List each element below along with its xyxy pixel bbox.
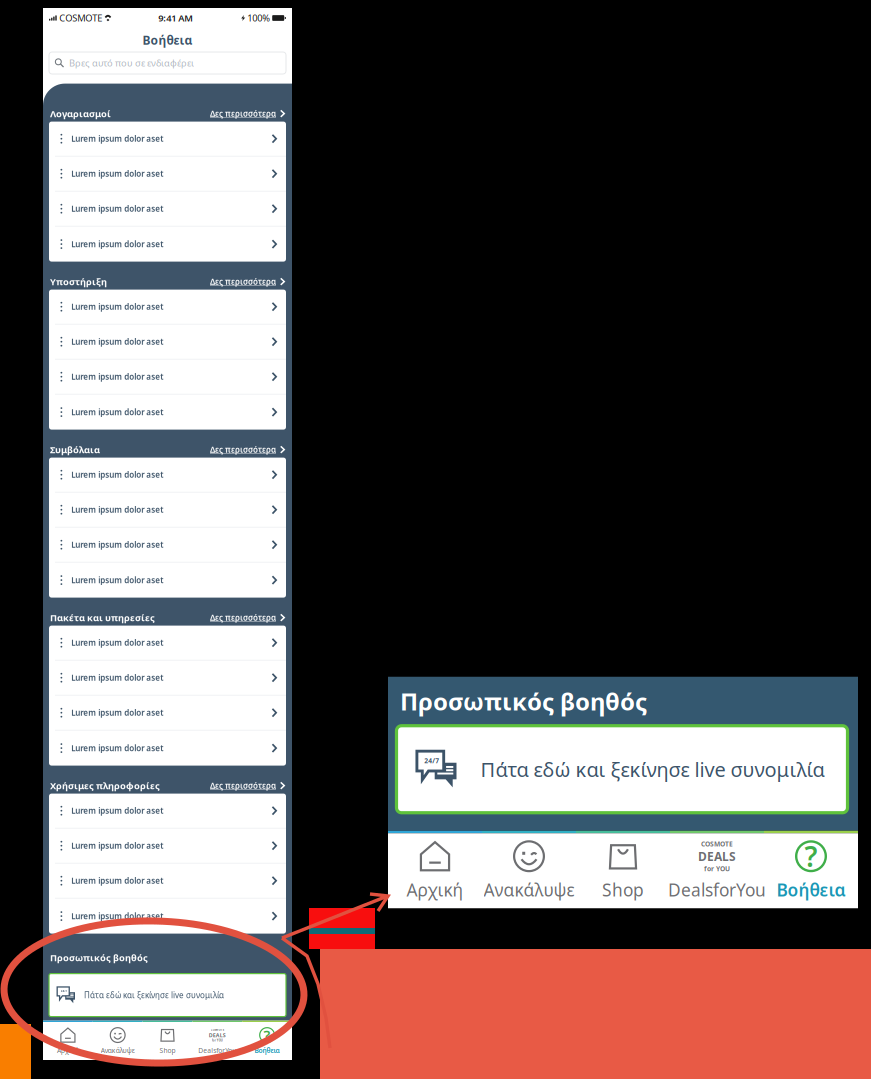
staticText: COSMOTE <box>59 12 102 24</box>
button[interactable]: Βρες αυτό που σε ενδιαφέρει <box>49 52 286 74</box>
staticText: Lurem ipsum dolor aset <box>71 239 163 249</box>
button[interactable]: Lurem ipsum dolor aset <box>49 122 286 157</box>
staticText: Πάτα εδώ και ξεκίνησε live συνομιλία <box>480 756 824 783</box>
button[interactable]: Lurem ipsum dolor aset <box>49 325 286 360</box>
staticText: 24/7 <box>60 989 67 993</box>
staticText: Lurem ipsum dolor aset <box>71 911 163 921</box>
button[interactable]: Lurem ipsum dolor aset <box>49 458 286 493</box>
staticText: Ανακάλυψε <box>483 878 574 901</box>
staticText: 100% <box>247 12 270 24</box>
button[interactable]: Lurem ipsum dolor aset <box>49 157 286 192</box>
staticText: COSMOTE <box>211 1028 224 1031</box>
staticText: Lurem ipsum dolor aset <box>71 371 163 382</box>
staticText: for YOU <box>704 864 730 873</box>
staticText: Lurem ipsum dolor aset <box>71 539 163 550</box>
staticText: Lurem ipsum dolor aset <box>71 875 163 886</box>
button[interactable]: Lurem ipsum dolor aset <box>49 493 286 528</box>
staticText: Πάτα εδώ και ξεκίνησε live συνομιλία <box>84 990 224 1000</box>
button[interactable]: Lurem ipsum dolor aset <box>49 227 286 262</box>
button[interactable]: Lurem ipsum dolor aset <box>49 626 286 661</box>
staticText: Lurem ipsum dolor aset <box>71 504 163 515</box>
staticText: Λογαριασμοί <box>50 107 111 120</box>
staticText: 24/7 <box>424 756 439 765</box>
staticText: Βοήθεια <box>776 878 845 901</box>
button[interactable]: Lurem ipsum dolor aset <box>49 696 286 731</box>
staticText: Lurem ipsum dolor aset <box>71 637 163 648</box>
staticText: Δες περισσότερα <box>210 444 276 455</box>
button[interactable]: Αρχική <box>388 840 482 901</box>
staticText: Υποστήριξη <box>50 275 107 288</box>
staticText: Δες περισσότερα <box>210 108 276 119</box>
button[interactable]: Lurem ipsum dolor aset <box>49 794 286 829</box>
button[interactable]: Lurem ipsum dolor aset <box>49 731 286 766</box>
staticText: DealsforYou <box>668 878 766 901</box>
staticText: Πακέτα και υπηρεσίες <box>50 611 155 624</box>
button[interactable]: COSMOTE <box>192 1027 242 1055</box>
staticText: Lurem ipsum dolor aset <box>71 407 163 417</box>
button[interactable]: 24/7 <box>49 974 286 1017</box>
staticText: Αρχική <box>57 1046 79 1055</box>
button[interactable]: Ανακάλυψε <box>482 840 576 901</box>
staticText: Lurem ipsum dolor aset <box>71 707 163 718</box>
button[interactable]: Lurem ipsum dolor aset <box>49 864 286 899</box>
staticText: Lurem ipsum dolor aset <box>71 168 163 179</box>
staticText: Δες περισσότερα <box>210 780 276 791</box>
staticText: Lurem ipsum dolor aset <box>71 672 163 683</box>
button[interactable]: Συμβόλαια <box>43 438 292 458</box>
staticText: Lurem ipsum dolor aset <box>71 133 163 144</box>
staticText: Lurem ipsum dolor aset <box>71 203 163 214</box>
staticText: Lurem ipsum dolor aset <box>71 840 163 851</box>
button[interactable]: Lurem ipsum dolor aset <box>49 360 286 395</box>
button[interactable]: Πακέτα και υπηρεσίες <box>43 606 292 626</box>
button[interactable]: COSMOTE <box>670 840 764 901</box>
staticText: Lurem ipsum dolor aset <box>71 469 163 480</box>
staticText: Ανακάλυψε <box>101 1046 135 1055</box>
button[interactable]: Lurem ipsum dolor aset <box>49 563 286 598</box>
button[interactable]: Λογαριασμοί <box>43 102 292 122</box>
button[interactable]: ? <box>242 1027 292 1055</box>
staticText: Lurem ipsum dolor aset <box>71 743 163 753</box>
button[interactable]: 24/7 <box>397 726 848 813</box>
staticText: Δες περισσότερα <box>210 612 276 623</box>
staticText: Χρήσιμες πληροφορίες <box>50 779 160 792</box>
button[interactable]: Shop <box>143 1027 192 1055</box>
button[interactable]: Lurem ipsum dolor aset <box>49 899 286 934</box>
staticText: Shop <box>159 1046 175 1055</box>
staticText: Προσωπικός βοηθός <box>50 951 148 964</box>
staticText: Βοήθεια <box>255 1046 280 1055</box>
staticText: Δες περισσότερα <box>210 276 276 287</box>
button[interactable]: Lurem ipsum dolor aset <box>49 528 286 563</box>
staticText: DEALS <box>209 1031 226 1039</box>
staticText: Συμβόλαια <box>50 443 100 456</box>
staticText: Lurem ipsum dolor aset <box>71 301 163 312</box>
staticText: COSMOTE <box>701 839 733 848</box>
button[interactable]: Ανακάλυψε <box>93 1027 143 1055</box>
button[interactable]: Lurem ipsum dolor aset <box>49 290 286 325</box>
button[interactable]: Lurem ipsum dolor aset <box>49 395 286 430</box>
staticText: Lurem ipsum dolor aset <box>71 805 163 816</box>
staticText: Βρες αυτό που σε ενδιαφέρει <box>69 57 194 69</box>
button[interactable]: Υποστήριξη <box>43 270 292 290</box>
button[interactable]: Αρχική <box>43 1027 93 1055</box>
staticText: DEALS <box>698 848 736 864</box>
staticText: Αρχική <box>406 878 463 901</box>
staticText: Lurem ipsum dolor aset <box>71 336 163 347</box>
staticText: DealsforYou <box>198 1046 236 1055</box>
staticText: Lurem ipsum dolor aset <box>71 575 163 585</box>
button[interactable]: Shop <box>576 840 670 901</box>
staticText: Shop <box>602 878 644 901</box>
button[interactable]: ? <box>764 840 858 901</box>
staticText: Βοήθεια <box>142 32 192 48</box>
staticText: Προσωπικός βοηθός <box>400 685 647 717</box>
button[interactable]: Lurem ipsum dolor aset <box>49 192 286 227</box>
button[interactable]: Lurem ipsum dolor aset <box>49 829 286 864</box>
staticText: for YOU <box>212 1039 223 1042</box>
staticText: 9:41 AM <box>158 12 193 24</box>
staticText: ? <box>264 1025 271 1045</box>
button[interactable]: Lurem ipsum dolor aset <box>49 661 286 696</box>
button[interactable]: Χρήσιμες πληροφορίες <box>43 774 292 794</box>
staticText: ? <box>804 838 817 875</box>
